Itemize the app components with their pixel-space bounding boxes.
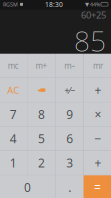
button[interactable]: 9 (56, 102, 84, 126)
staticText: 6 (66, 131, 73, 147)
staticText: 85 (74, 22, 106, 59)
staticText: m+ (35, 60, 47, 71)
button[interactable]: + (84, 151, 111, 175)
staticText: 7 (10, 106, 17, 122)
staticText: 60+25 (81, 9, 106, 21)
staticText: ◂ (37, 86, 40, 94)
button[interactable]: 0 (0, 175, 55, 198)
button[interactable]: 5 (27, 127, 55, 151)
button[interactable]: 4 (0, 127, 27, 151)
button[interactable]: 8 (27, 102, 55, 126)
button[interactable]: m– (56, 54, 84, 78)
staticText: . (68, 179, 71, 195)
button[interactable]: +⁄− (56, 78, 84, 102)
staticText: RGSM (3, 1, 18, 8)
staticText: × (94, 106, 101, 122)
staticText: − (94, 131, 101, 147)
button[interactable]: AC (0, 78, 27, 102)
staticText: 3 (66, 155, 73, 171)
staticText: +⁄− (64, 84, 75, 96)
button[interactable]: mc (0, 54, 27, 78)
staticText: mr (93, 60, 103, 71)
button[interactable]: . (56, 175, 84, 198)
button[interactable]: m+ (27, 54, 55, 78)
staticText: mc (8, 60, 19, 71)
staticText: 1 (10, 155, 17, 171)
staticText: AC (7, 84, 19, 96)
button[interactable]: 6 (56, 127, 84, 151)
button[interactable]: − (84, 127, 111, 151)
staticText: 4 (10, 131, 17, 147)
staticText: ▼ (85, 1, 89, 7)
staticText: 18:30 (45, 0, 63, 9)
staticText: m– (64, 60, 75, 71)
staticText: 2 (38, 155, 45, 171)
button[interactable]: 7 (0, 102, 27, 126)
button[interactable]: 2 (27, 151, 55, 175)
staticText: 5 (38, 131, 45, 147)
button[interactable]: = (83, 175, 111, 198)
button[interactable]: 3 (56, 151, 84, 175)
staticText: 9 (66, 106, 73, 122)
button[interactable]: mr (84, 54, 111, 78)
button[interactable]: + (84, 78, 111, 102)
staticText: + (94, 82, 101, 98)
staticText: 44% (90, 1, 100, 8)
staticText: 8 (38, 106, 45, 122)
staticText: = (94, 179, 101, 195)
staticText: 0 (24, 179, 31, 195)
button[interactable]: Backspace (27, 78, 55, 102)
staticText: + (94, 155, 101, 171)
button[interactable]: × (84, 102, 111, 126)
button[interactable]: 1 (0, 151, 27, 175)
